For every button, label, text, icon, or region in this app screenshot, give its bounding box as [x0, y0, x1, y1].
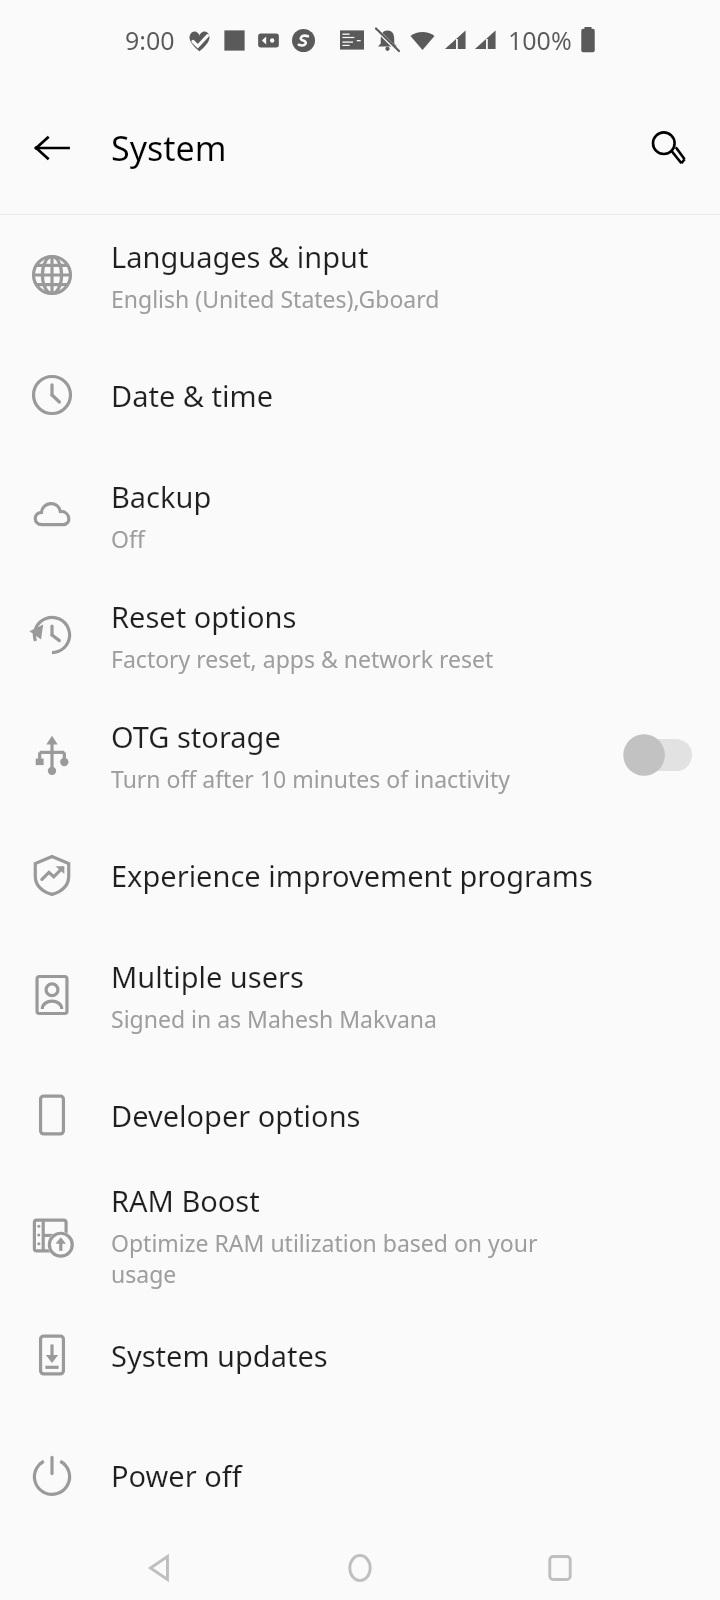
staticText: 9:00 — [125, 23, 175, 57]
staticText: Developer options — [111, 1096, 361, 1135]
button[interactable]: Power off — [0, 1415, 720, 1535]
staticText: Experience improvement programs — [111, 856, 593, 895]
button[interactable]: Reset options — [0, 575, 720, 695]
staticText: English (United States),Gboard — [111, 283, 440, 314]
staticText: System updates — [111, 1336, 328, 1375]
button[interactable]: Date & time — [0, 335, 720, 455]
button[interactable]: System updates — [0, 1295, 720, 1415]
button[interactable]: Back — [120, 1535, 200, 1600]
staticText: Multiple users — [111, 957, 304, 996]
button[interactable]: Languages & input — [0, 215, 720, 335]
staticText: Date & time — [111, 376, 273, 415]
staticText: Power off — [111, 1456, 242, 1495]
button[interactable]: Search — [636, 117, 698, 179]
staticText: Signed in as Mahesh Makvana — [111, 1003, 437, 1034]
button[interactable]: Home — [320, 1535, 400, 1600]
button[interactable]: Recent apps — [520, 1535, 600, 1600]
button[interactable]: Experience improvement programs — [0, 815, 720, 935]
button[interactable]: RAM Boost — [0, 1175, 720, 1295]
button[interactable]: Developer options — [0, 1055, 720, 1175]
staticText: Reset options — [111, 597, 297, 636]
button[interactable]: Backup — [0, 455, 720, 575]
staticText: Backup — [111, 477, 212, 516]
staticText: Factory reset, apps & network reset — [111, 643, 494, 674]
staticText: OTG storage — [111, 717, 281, 756]
staticText: System — [111, 125, 227, 171]
staticText: RAM Boost — [111, 1181, 260, 1220]
button[interactable]: Back — [22, 118, 82, 178]
button[interactable]: OTG storage — [0, 695, 720, 815]
staticText: 100% — [508, 23, 572, 57]
button[interactable]: OTG storage toggle — [616, 729, 692, 781]
staticText: Languages & input — [111, 237, 369, 276]
staticText: Off — [111, 523, 145, 554]
button[interactable]: Multiple users — [0, 935, 720, 1055]
staticText: Optimize RAM utilization based on your u… — [111, 1227, 600, 1289]
staticText: Turn off after 10 minutes of inactivity — [111, 763, 511, 794]
